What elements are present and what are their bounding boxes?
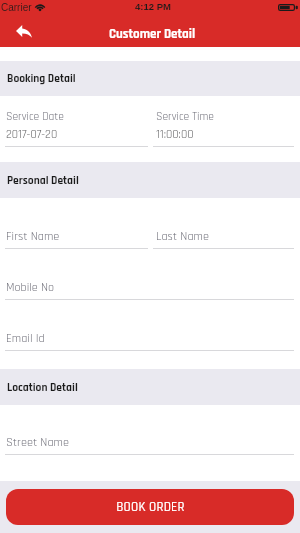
staticText: Email Id xyxy=(6,331,45,347)
staticText: Booking Detail xyxy=(7,71,76,86)
button[interactable]: Last Name xyxy=(150,198,300,249)
staticText: Customer Detail xyxy=(109,26,196,43)
staticText: Location Detail xyxy=(7,380,78,395)
button[interactable]: First Name xyxy=(0,198,150,249)
button[interactable]: Mobile No xyxy=(0,249,300,300)
staticText: Service Date xyxy=(6,109,65,124)
staticText: 4:12 PM xyxy=(135,1,171,12)
button[interactable]: Email Id xyxy=(0,300,300,351)
button[interactable]: Back xyxy=(12,20,35,41)
button[interactable]: Booking Detail xyxy=(7,61,300,96)
button[interactable]: Location Detail xyxy=(7,369,300,405)
staticText: 11:00:00 xyxy=(156,127,194,143)
button[interactable]: Service Time xyxy=(150,96,300,147)
button[interactable]: BOOK ORDER xyxy=(6,489,294,525)
staticText: Street Name xyxy=(6,435,69,451)
button[interactable]: Street Name xyxy=(0,405,300,455)
staticText: Last Name xyxy=(156,229,209,245)
staticText: Carrier xyxy=(1,2,32,13)
staticText: First Name xyxy=(6,229,60,245)
staticText: BOOK ORDER xyxy=(116,499,185,516)
button[interactable]: Service Date xyxy=(0,96,150,147)
staticText: 2017-07-20 xyxy=(6,127,58,143)
staticText: Mobile No xyxy=(6,280,55,296)
staticText: Service Time xyxy=(156,109,214,124)
button[interactable]: Personal Detail xyxy=(7,162,300,198)
staticText: Personal Detail xyxy=(7,173,79,188)
